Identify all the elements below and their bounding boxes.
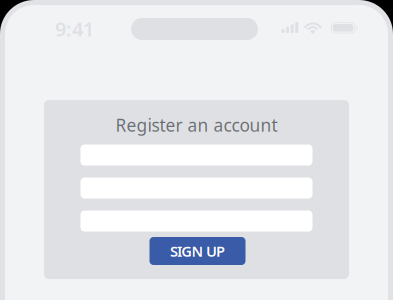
button[interactable]: SIGN UP — [149, 237, 245, 265]
staticText: SIGN UP — [170, 241, 225, 261]
staticText: 9:41 — [55, 15, 94, 42]
staticText: Register an account — [115, 113, 277, 136]
